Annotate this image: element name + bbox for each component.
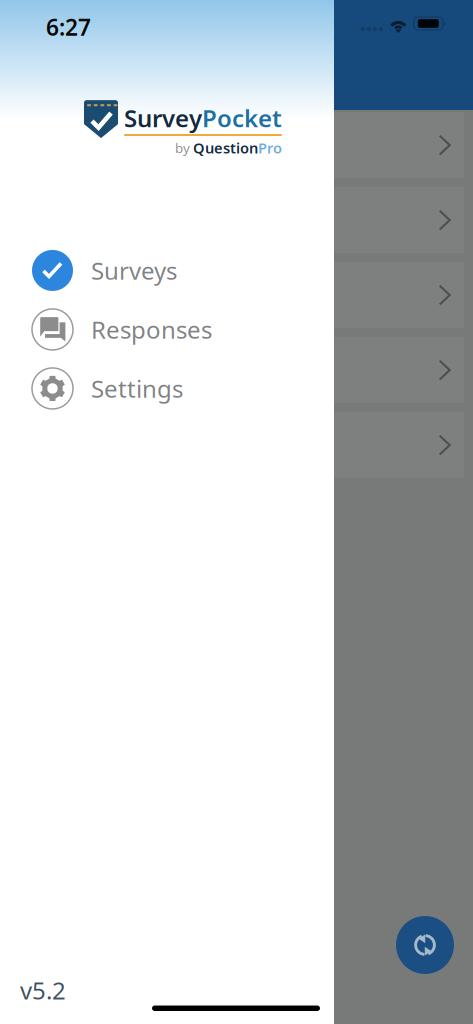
staticText: Settings (91, 372, 183, 404)
staticText: v5.2 (20, 974, 66, 1006)
button[interactable]: Surveys (32, 246, 334, 294)
staticText: Question (193, 138, 258, 157)
staticText: Pocket (202, 102, 282, 134)
staticText: Survey (124, 102, 202, 134)
staticText: Surveys (91, 254, 177, 286)
staticText: Responses (91, 313, 212, 345)
staticText: 6:27 (46, 12, 91, 42)
staticText: by (175, 139, 193, 157)
button[interactable]: Responses (32, 305, 334, 353)
button[interactable]: Sync (396, 916, 454, 974)
button[interactable]: Settings (32, 364, 334, 412)
staticText: Pro (258, 138, 282, 157)
